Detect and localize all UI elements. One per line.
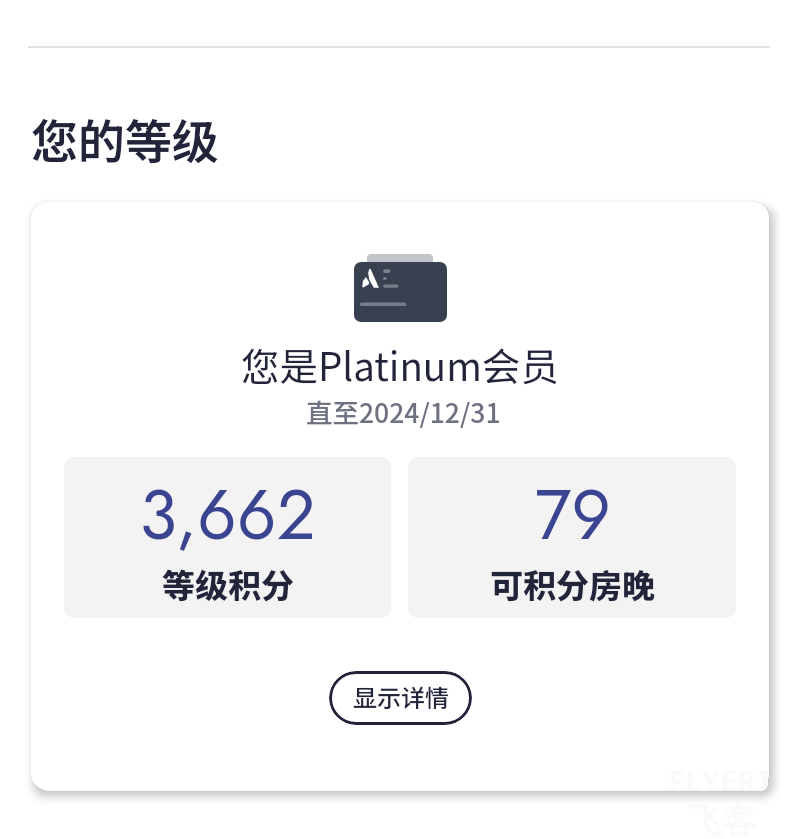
- other: Platinum membership card: [354, 254, 447, 322]
- staticText: 您的等级: [31, 104, 219, 172]
- staticText: 可积分房晚: [490, 560, 655, 608]
- button[interactable]: 显示详情: [329, 671, 472, 725]
- staticText: 直至2024/12/31: [306, 392, 501, 430]
- staticText: 您是Platinum会员: [241, 336, 559, 392]
- staticText: 等级积分: [162, 560, 294, 608]
- staticText: FLYERT: [669, 762, 775, 800]
- staticText: 79: [535, 465, 611, 565]
- staticText: 3,662: [139, 465, 316, 565]
- staticText: 显示详情: [353, 679, 449, 714]
